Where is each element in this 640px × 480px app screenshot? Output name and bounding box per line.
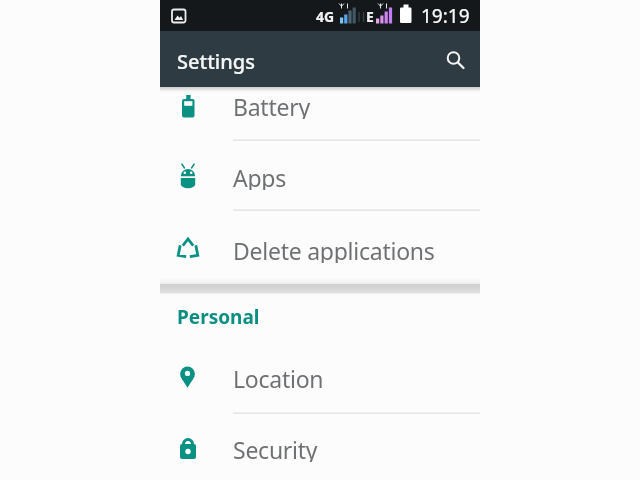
button[interactable]: Apps [160,140,480,212]
button[interactable]: Security [160,413,480,480]
button[interactable]: Delete applications [160,212,480,284]
staticText: Settings [177,48,255,75]
staticText: 19:19 [421,3,470,29]
staticText: E [366,7,374,25]
button[interactable]: Location [160,341,480,413]
staticText: Battery [233,91,310,119]
staticText: Apps [233,162,287,190]
staticText: Location [233,363,324,391]
staticText: Security [233,434,318,462]
button[interactable]: Battery [160,87,480,140]
staticText: Delete applications [233,235,435,263]
button[interactable] [432,35,480,83]
staticText: Personal [177,304,260,330]
staticText: 4G [316,7,335,25]
